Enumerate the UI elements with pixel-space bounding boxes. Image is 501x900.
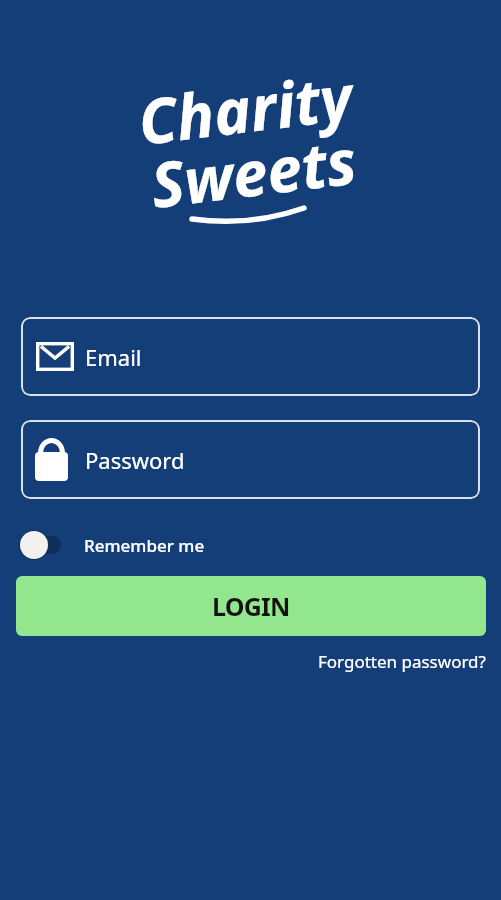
staticText: Sweets (146, 117, 361, 226)
staticText: Password (85, 445, 185, 475)
staticText: Remember me (84, 534, 205, 557)
staticText: Email (85, 342, 142, 372)
button[interactable]: Password (21, 420, 480, 499)
button[interactable]: LOGIN (16, 576, 486, 636)
staticText: Charity (134, 53, 357, 163)
staticText: LOGIN (212, 589, 290, 623)
button[interactable]: Email (21, 317, 480, 396)
button[interactable]: Forgotten password? (318, 650, 486, 673)
button[interactable]: Remember me (20, 529, 205, 561)
